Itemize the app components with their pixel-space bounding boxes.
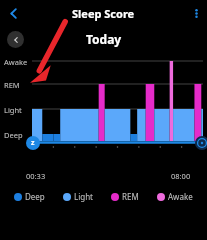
staticText: Today bbox=[86, 31, 122, 47]
button[interactable]: Back bbox=[0, 0, 26, 26]
staticText: z bbox=[31, 138, 35, 148]
staticText: Sleep Score bbox=[72, 6, 135, 21]
staticText: Light bbox=[74, 191, 94, 202]
staticText: Deep bbox=[25, 191, 45, 202]
staticText: Deep bbox=[4, 130, 23, 140]
button[interactable]: Sleep start bbox=[26, 136, 40, 150]
button[interactable]: Previous day bbox=[7, 31, 24, 48]
staticText: Awake bbox=[168, 191, 193, 202]
staticText: Light bbox=[4, 105, 22, 115]
button[interactable]: More options bbox=[185, 0, 207, 26]
staticText: Awake bbox=[4, 57, 28, 67]
staticText: REM bbox=[122, 191, 139, 202]
staticText: 00:33 bbox=[26, 171, 46, 181]
button[interactable]: Deep bbox=[14, 189, 45, 204]
button[interactable]: REM bbox=[111, 189, 139, 204]
button[interactable]: Awake bbox=[157, 189, 193, 204]
staticText: 08:00 bbox=[171, 171, 191, 181]
other: Wake time bbox=[195, 136, 207, 150]
staticText: REM bbox=[4, 80, 20, 90]
button[interactable]: Light bbox=[63, 189, 94, 204]
